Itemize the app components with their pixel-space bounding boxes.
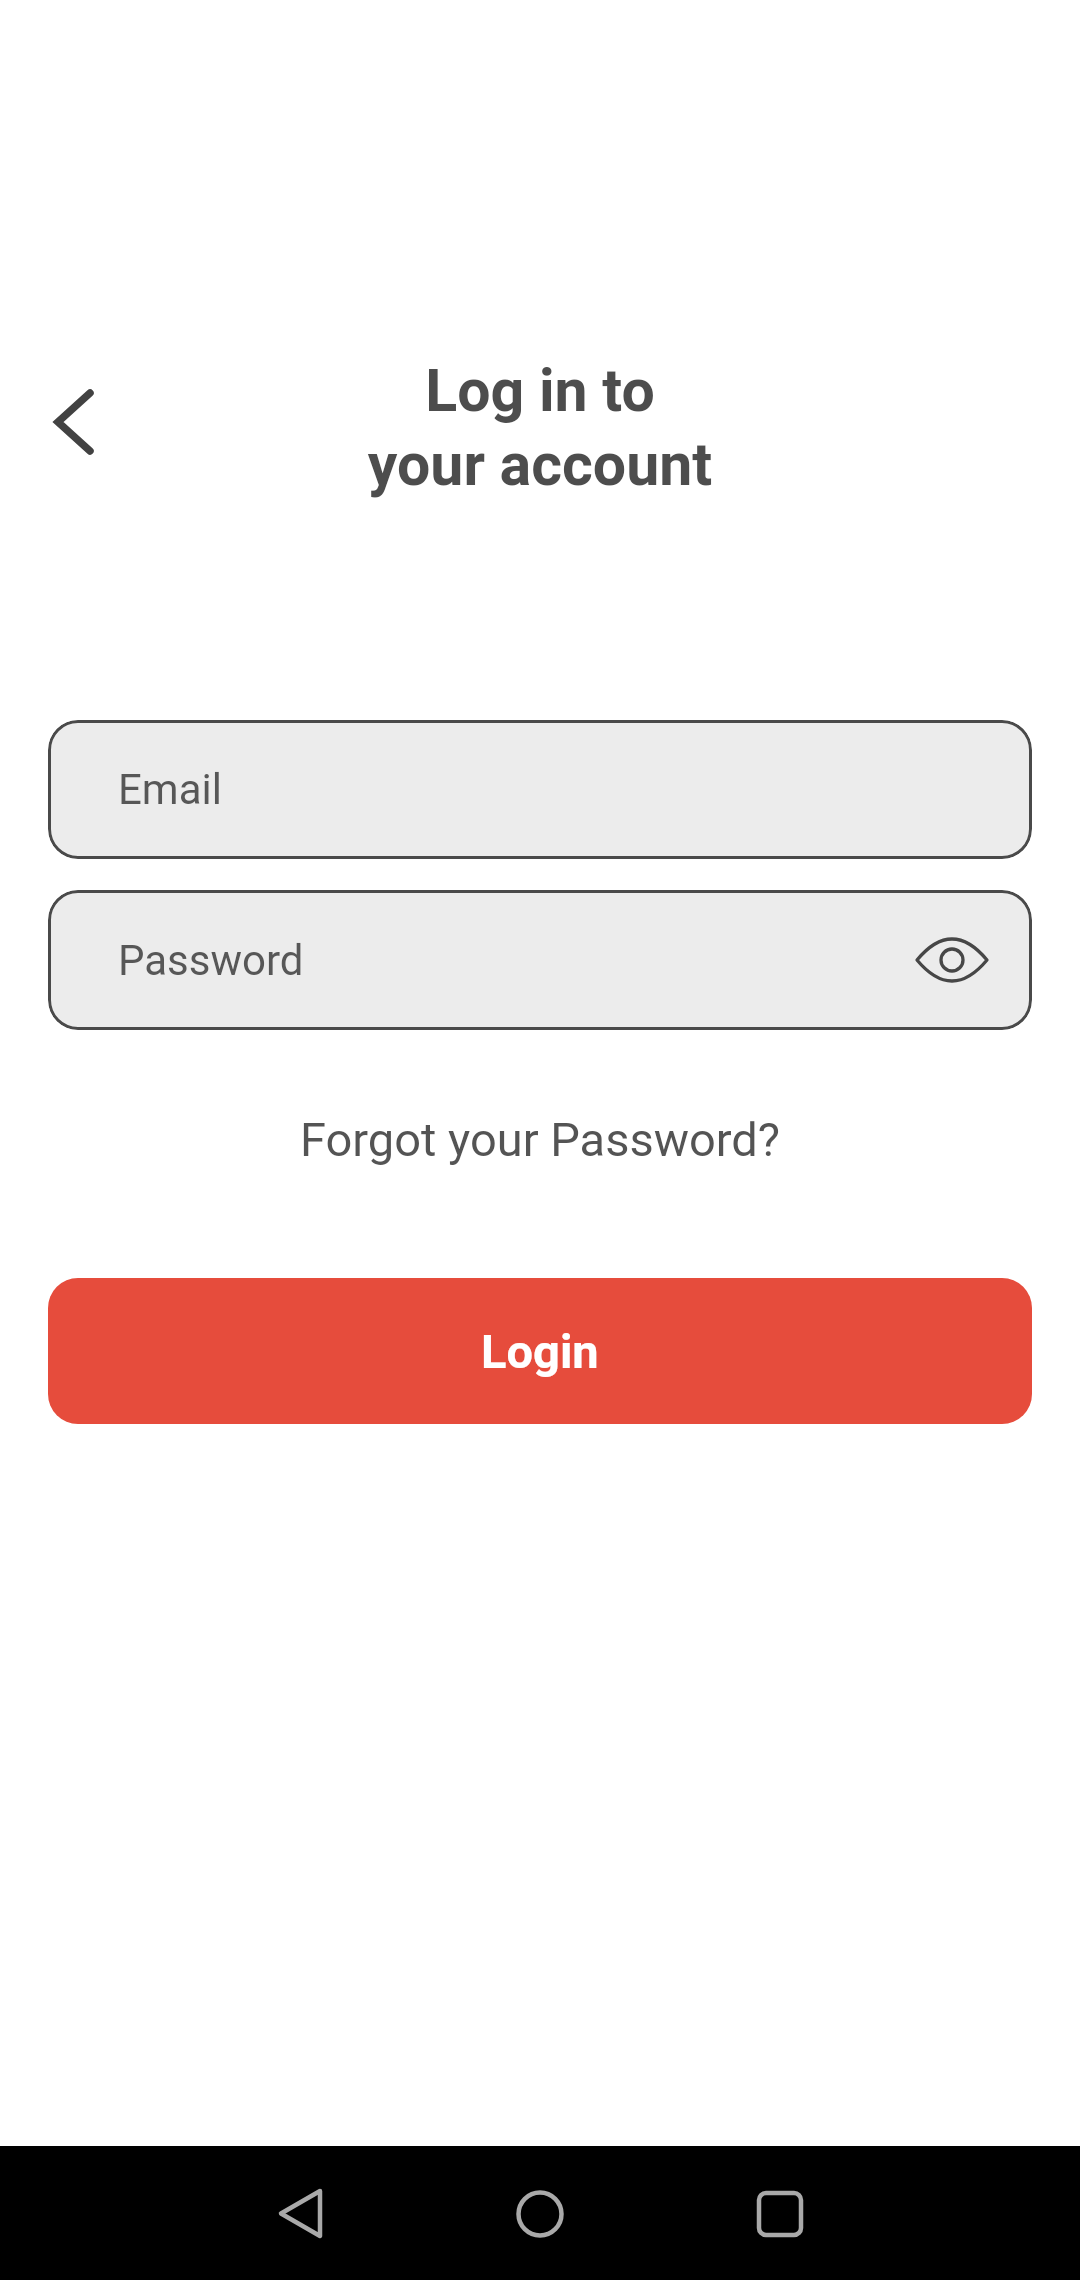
staticText: Password (118, 936, 304, 985)
button[interactable] (914, 936, 990, 984)
staticText: Email (118, 765, 222, 814)
button[interactable] (36, 372, 112, 472)
button[interactable]: Forgot your Password? (300, 1112, 781, 1167)
staticText: Login (481, 1324, 599, 1379)
staticText: Log in to your account (0, 356, 1080, 500)
button[interactable] (248, 2161, 353, 2266)
button[interactable] (487, 2161, 592, 2266)
button[interactable]: Login (48, 1278, 1032, 1424)
button[interactable]: Password (48, 890, 1032, 1030)
button[interactable] (727, 2161, 832, 2266)
button[interactable]: Email (48, 720, 1032, 859)
